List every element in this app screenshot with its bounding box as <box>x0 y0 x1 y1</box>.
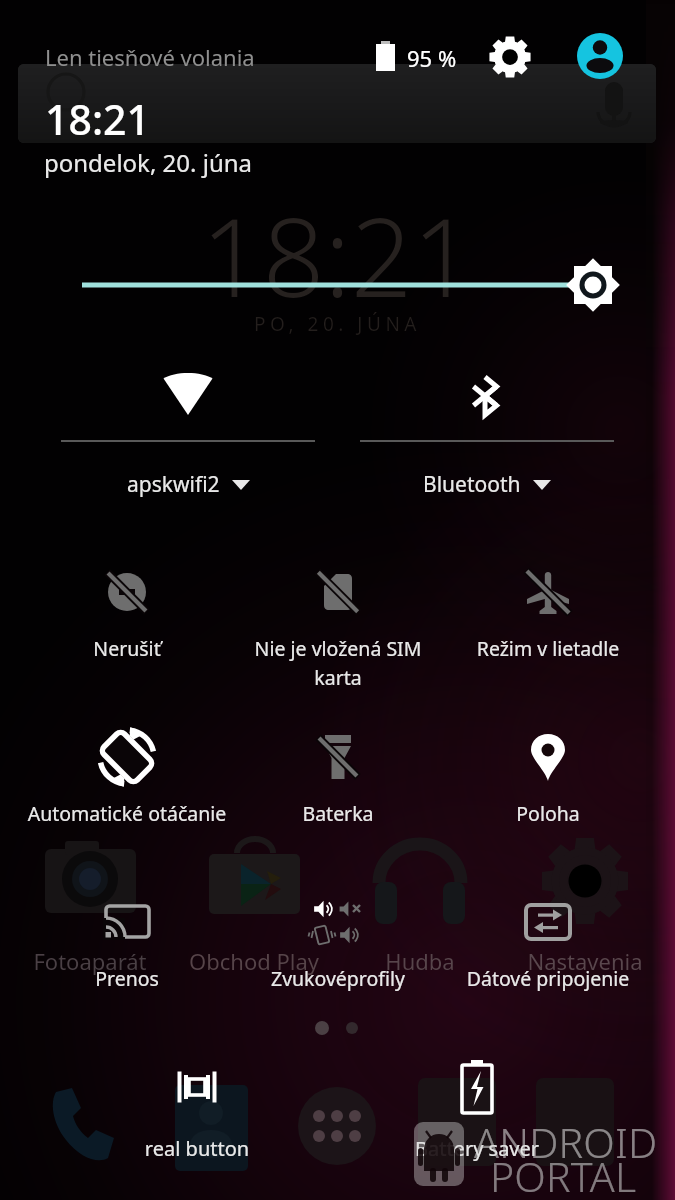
button[interactable]: Baterka <box>233 721 443 845</box>
staticText: Hudba <box>340 946 500 976</box>
button[interactable]: Prenos <box>22 886 232 1010</box>
staticText: Len tiesňové volania <box>45 42 255 72</box>
staticText: Battery saver <box>372 1135 582 1162</box>
button[interactable] <box>40 360 336 500</box>
staticText: 95 % <box>407 43 457 73</box>
button[interactable]: Search <box>18 64 656 143</box>
staticText: Bluetooth <box>423 470 521 499</box>
staticText: Dátové pripojenie <box>443 965 653 992</box>
button[interactable]: Brightness <box>60 255 630 315</box>
staticText: PO, 20. JÚNA <box>0 311 675 337</box>
staticText: PORTAL <box>490 1148 637 1200</box>
button[interactable]: Settings <box>486 33 534 81</box>
staticText: Poloha <box>443 800 653 827</box>
staticText: Automatické otáčanie <box>22 800 232 827</box>
button[interactable]: Nie je vložená SIM karta <box>233 556 443 680</box>
staticText: pondelok, 20. júna <box>44 146 253 179</box>
button[interactable]: Dátové pripojenie <box>443 886 653 1010</box>
staticText: Zvukovéprofily <box>233 965 443 992</box>
button[interactable]: real button <box>92 1051 302 1175</box>
staticText: 18:21 <box>0 182 675 329</box>
staticText: Nerušiť <box>22 635 232 662</box>
staticText: 18:21 <box>45 91 150 147</box>
button[interactable]: Poloha <box>443 721 653 845</box>
button[interactable]: User profile <box>577 33 623 79</box>
staticText: Nastavenia <box>505 946 665 976</box>
staticText: Prenos <box>22 965 232 992</box>
staticText: Fotoaparát <box>10 946 170 976</box>
staticText: Baterka <box>233 800 443 827</box>
button[interactable]: Nerušiť <box>22 556 232 680</box>
staticText: ANDROID <box>474 1114 658 1170</box>
staticText: Nie je vložená SIM karta <box>233 635 443 690</box>
staticText: real button <box>92 1135 302 1162</box>
staticText: apskwifi2 <box>127 470 220 499</box>
staticText: Režim v lietadle <box>443 635 653 662</box>
button[interactable]: Režim v lietadle <box>443 556 653 680</box>
button[interactable]: Battery saver <box>372 1051 582 1175</box>
button[interactable]: Zvukovéprofily <box>233 886 443 1010</box>
button[interactable]: Automatické otáčanie <box>22 721 232 845</box>
staticText: Obchod Play <box>174 946 334 976</box>
button[interactable] <box>339 360 635 500</box>
